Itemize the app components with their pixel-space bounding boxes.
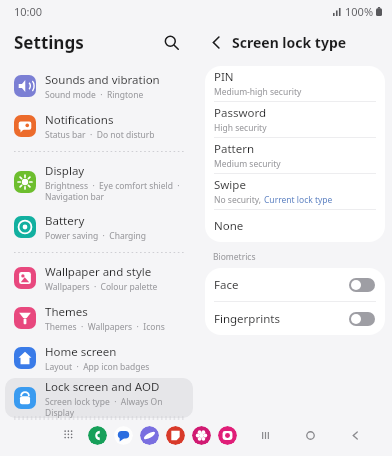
button[interactable]: Face xyxy=(205,268,385,301)
button[interactable]: Home screen xyxy=(5,338,193,378)
button[interactable]: Themes xyxy=(5,298,193,338)
button[interactable]: Phone xyxy=(88,426,107,445)
button[interactable]: Password xyxy=(205,102,385,137)
staticText: Sound mode · Ringtone xyxy=(45,89,144,101)
staticText: PIN xyxy=(214,69,234,85)
staticText: Status bar · Do not disturb xyxy=(45,129,155,141)
staticText: Wallpaper and style xyxy=(45,264,152,280)
button[interactable]: Battery xyxy=(5,207,193,247)
button[interactable]: Apps xyxy=(58,424,80,446)
button[interactable]: Home xyxy=(299,424,321,446)
button[interactable]: Gallery xyxy=(192,426,211,445)
button[interactable]: Fingerprints xyxy=(205,302,385,335)
button[interactable]: Wallpaper and style xyxy=(5,258,193,298)
button[interactable]: Recents xyxy=(254,424,276,446)
staticText: Layout · App icon badges xyxy=(45,361,150,373)
staticText: Medium security xyxy=(214,158,281,170)
staticText: Lock screen and AOD xyxy=(45,379,160,395)
button[interactable]: PIN xyxy=(205,66,385,101)
button[interactable]: Search xyxy=(158,29,184,55)
staticText: Current lock type xyxy=(264,194,333,206)
staticText: Password xyxy=(214,105,267,121)
staticText: Power saving · Charging xyxy=(45,230,146,242)
staticText: Biometrics xyxy=(213,251,256,263)
staticText: Notifications xyxy=(45,112,114,128)
staticText: Swipe xyxy=(214,177,246,193)
staticText: Face xyxy=(214,277,239,293)
staticText: No security, xyxy=(214,194,264,206)
staticText: Fingerprints xyxy=(214,311,280,327)
staticText: Themes · Wallpapers · Icons xyxy=(45,321,165,333)
staticText: Screen lock type · Always On Display xyxy=(45,396,193,418)
staticText: Battery xyxy=(45,213,85,229)
button[interactable]: Messages xyxy=(114,426,133,445)
button[interactable]: Pattern xyxy=(205,138,385,173)
staticText: Themes xyxy=(45,304,88,320)
staticText: 10:00 xyxy=(14,4,43,19)
button[interactable]: Display xyxy=(5,157,193,207)
button[interactable]: Notifications xyxy=(5,106,193,146)
staticText: Display xyxy=(45,163,85,179)
button[interactable]: Back xyxy=(344,424,366,446)
button[interactable]: Lock screen and AOD xyxy=(5,378,193,418)
button[interactable]: None xyxy=(205,210,385,242)
staticText: Screen lock type xyxy=(232,33,347,52)
staticText: 100% xyxy=(345,4,374,19)
button[interactable]: Notes xyxy=(166,426,185,445)
button[interactable]: Swipe xyxy=(205,174,385,209)
staticText: Sounds and vibration xyxy=(45,72,160,88)
staticText: Home screen xyxy=(45,344,117,360)
button[interactable]: Sounds and vibration xyxy=(5,66,193,106)
staticText: None xyxy=(214,218,244,234)
button[interactable]: Back xyxy=(204,30,228,54)
button[interactable]: Camera xyxy=(218,426,237,445)
staticText: Pattern xyxy=(214,141,255,157)
staticText: Wallpapers · Colour palette xyxy=(45,281,158,293)
staticText: Brightness · Eye comfort shield · Naviga… xyxy=(45,180,180,202)
staticText: High security xyxy=(214,122,267,134)
button[interactable]: Internet xyxy=(140,426,159,445)
staticText: Medium-high security xyxy=(214,86,302,98)
staticText: Settings xyxy=(14,31,84,54)
